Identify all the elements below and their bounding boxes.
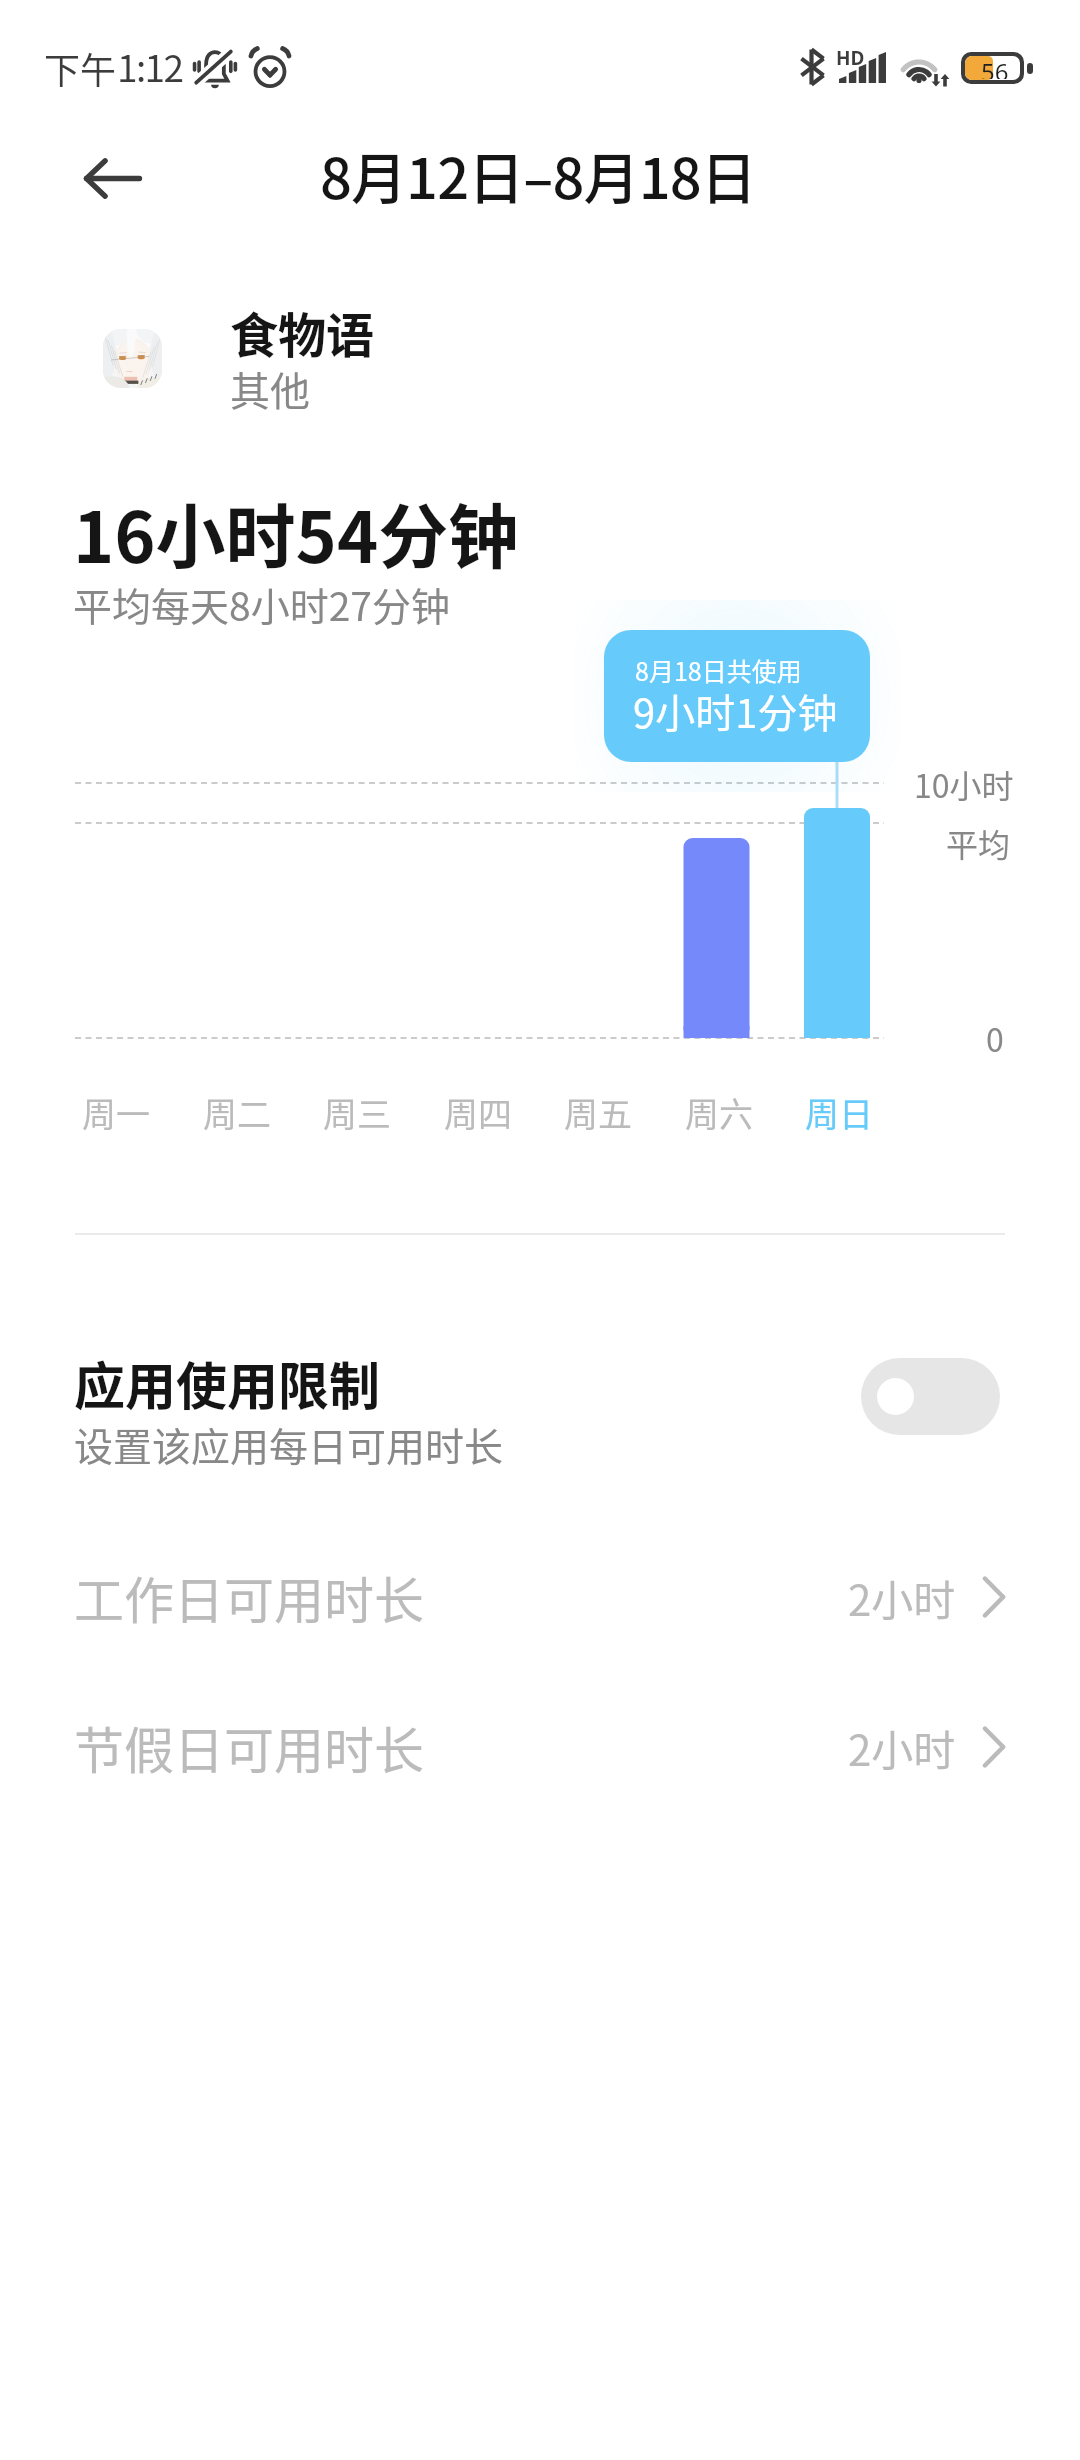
staticText: 2小时 <box>848 1567 956 1628</box>
staticText: 9小时1分钟 <box>633 682 838 740</box>
staticText: 周日 <box>805 1088 873 1137</box>
staticText: 周六 <box>685 1088 753 1137</box>
staticText: 8月12日–8月18日 <box>320 134 756 215</box>
staticText: 下午 <box>44 42 117 94</box>
staticText: 16小时54分钟 <box>73 482 519 583</box>
staticText: 0 <box>986 1015 1004 1061</box>
staticText: 其他 <box>230 360 310 418</box>
staticText: 周五 <box>564 1088 632 1137</box>
staticText: 周一 <box>82 1088 150 1137</box>
button[interactable]: 周五 <box>538 780 654 1140</box>
button[interactable]: 应用使用限制开关 <box>861 1358 1000 1435</box>
button[interactable]: 周二 <box>177 780 293 1140</box>
staticText: 56 <box>981 56 1009 79</box>
staticText: 8月18日共使用 <box>635 652 802 688</box>
button[interactable]: 食物语 <box>0 296 1080 420</box>
staticText: 平均每天8小时27分钟 <box>73 576 450 632</box>
staticText: 2小时 <box>848 1717 956 1778</box>
staticText: HD <box>836 45 865 71</box>
staticText: 应用使用限制 <box>74 1346 381 1420</box>
staticText: 周三 <box>323 1088 391 1137</box>
staticText: 周四 <box>444 1088 512 1137</box>
button[interactable]: 节假日可用时长 <box>74 1692 1006 1802</box>
button[interactable]: 返回 <box>50 136 150 220</box>
staticText: 工作日可用时长 <box>74 1561 424 1633</box>
button[interactable]: 周三 <box>297 780 413 1140</box>
staticText: 设置该应用每日可用时长 <box>74 1416 504 1472</box>
button[interactable]: 应用使用限制 <box>0 1323 1080 1479</box>
staticText: 节假日可用时长 <box>74 1711 424 1783</box>
staticText: 平均 <box>946 820 1011 866</box>
button[interactable]: 周六 <box>659 780 775 1140</box>
button[interactable]: 周日 <box>779 780 895 1140</box>
staticText: 1:12 <box>117 39 183 93</box>
button[interactable]: 周四 <box>418 780 534 1140</box>
staticText: 周二 <box>203 1088 271 1137</box>
button[interactable]: 工作日可用时长 <box>74 1542 1006 1652</box>
staticText: 食物语 <box>230 297 375 367</box>
button[interactable]: 周一 <box>56 780 172 1140</box>
staticText: 10小时 <box>914 761 1014 807</box>
